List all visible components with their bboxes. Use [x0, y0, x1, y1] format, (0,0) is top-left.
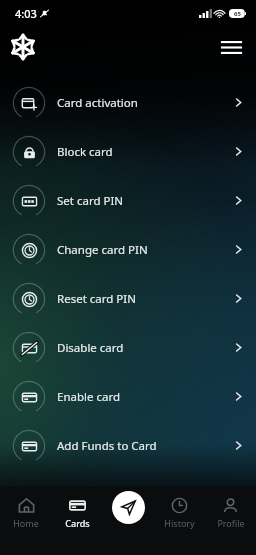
button[interactable]: Set card PIN	[0, 176, 256, 225]
staticText: Set card PIN	[57, 193, 233, 209]
staticText: Home	[13, 517, 39, 529]
staticText: 4:03	[15, 6, 37, 21]
staticText: Block card	[57, 144, 233, 160]
button[interactable]: Home	[0, 495, 52, 555]
button[interactable]: History	[154, 495, 205, 555]
button[interactable]: Cards	[52, 495, 103, 555]
staticText: Reset card PIN	[57, 291, 233, 307]
staticText: Card activation	[57, 95, 233, 111]
button[interactable]: Block card	[0, 127, 256, 176]
other: App logo	[10, 34, 36, 60]
staticText: 65	[234, 10, 241, 18]
button[interactable]: Send	[112, 491, 145, 524]
button[interactable]: Profile	[205, 495, 256, 555]
staticText: Disable card	[57, 340, 233, 356]
button[interactable]: Card activation	[0, 78, 256, 127]
staticText: Change card PIN	[57, 242, 233, 258]
staticText: Cards	[65, 517, 90, 529]
staticText: Add Funds to Card	[57, 438, 233, 454]
staticText: History	[164, 517, 195, 529]
button[interactable]: Enable card	[0, 372, 256, 421]
button[interactable]: Reset card PIN	[0, 274, 256, 323]
button[interactable]: Menu	[214, 30, 248, 64]
button[interactable]: Disable card	[0, 323, 256, 372]
button[interactable]: Change card PIN	[0, 225, 256, 274]
staticText: Enable card	[57, 389, 233, 405]
staticText: Profile	[217, 517, 245, 529]
button[interactable]: Add Funds to Card	[0, 421, 256, 470]
